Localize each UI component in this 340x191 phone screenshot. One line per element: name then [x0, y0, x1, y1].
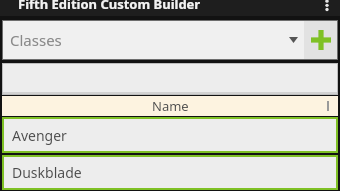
button[interactable]: More options: [314, 0, 340, 18]
staticText: Fifth Edition Custom Builder: [18, 0, 201, 13]
button[interactable]: Avenger: [2, 117, 338, 153]
button[interactable]: Duskblade: [2, 155, 338, 190]
staticText: Duskblade: [12, 163, 82, 182]
button[interactable]: Add: [304, 20, 338, 60]
button[interactable]: Name: [2, 96, 338, 116]
button[interactable]: Search field: [2, 63, 338, 95]
button[interactable]: Classes: [2, 20, 304, 60]
staticText: Classes: [10, 30, 289, 50]
staticText: Name: [152, 97, 189, 115]
staticText: Avenger: [12, 126, 67, 145]
